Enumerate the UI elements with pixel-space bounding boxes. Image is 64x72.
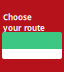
staticText: Choose [3,12,32,22]
staticText: your route [3,22,45,33]
